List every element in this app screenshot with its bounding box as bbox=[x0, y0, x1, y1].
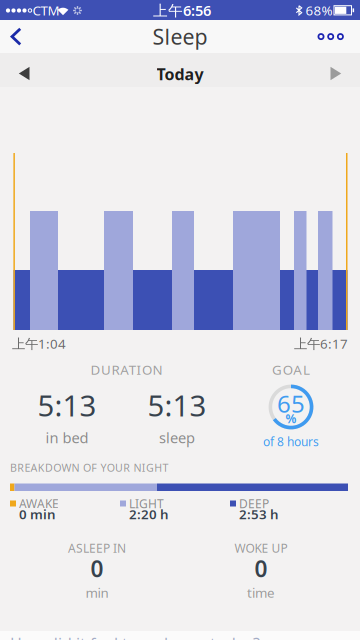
staticText: min bbox=[85, 584, 108, 601]
staticText: 0 min bbox=[19, 505, 56, 523]
button[interactable]: More options bbox=[315, 20, 360, 53]
staticText: LIGHT bbox=[129, 495, 164, 511]
staticText: DURATION bbox=[90, 361, 163, 378]
staticText: WOKE UP bbox=[234, 540, 287, 556]
staticText: 68% bbox=[305, 1, 332, 19]
staticText: 上午6:56 bbox=[153, 1, 211, 20]
staticText: time bbox=[247, 584, 275, 601]
staticText: BREAKDOWN OF YOUR NIGHT bbox=[10, 460, 168, 475]
staticText: ASLEEP IN bbox=[68, 540, 126, 556]
staticText: 2:20 h bbox=[129, 505, 169, 523]
staticText: AWAKE bbox=[19, 495, 59, 511]
staticText: 5:13 bbox=[147, 385, 206, 424]
staticText: 2:53 h bbox=[239, 505, 279, 523]
staticText: 0 bbox=[90, 553, 103, 583]
staticText: Sleep bbox=[152, 22, 207, 51]
staticText: 0 bbox=[254, 553, 267, 583]
staticText: Today bbox=[156, 63, 203, 85]
staticText: of 8 hours bbox=[263, 433, 319, 449]
staticText: GOAL bbox=[272, 361, 310, 378]
staticText: CTM bbox=[32, 1, 59, 19]
button[interactable]: Back bbox=[0, 20, 36, 53]
staticText: 65 bbox=[277, 388, 305, 419]
staticText: 上午6:17 bbox=[294, 335, 348, 352]
button[interactable]: Next day bbox=[312, 53, 360, 87]
staticText: 上午1:04 bbox=[12, 335, 66, 352]
staticText: % bbox=[285, 410, 296, 426]
staticText: 5:13 bbox=[37, 385, 96, 424]
staticText: DEEP bbox=[239, 495, 269, 511]
staticText: sleep bbox=[159, 428, 195, 447]
button[interactable]: Previous day bbox=[0, 53, 48, 87]
staticText: How did it feel to wake up today? bbox=[10, 633, 260, 640]
staticText: in bed bbox=[45, 428, 88, 447]
